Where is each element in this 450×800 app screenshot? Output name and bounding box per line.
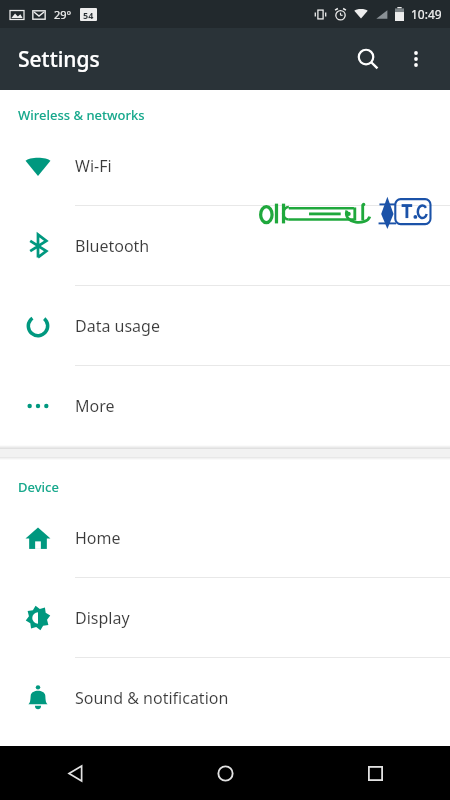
staticText: 29°	[54, 7, 72, 22]
staticText: Device	[18, 478, 59, 496]
button[interactable]: Home	[0, 498, 450, 577]
staticText: More	[75, 395, 115, 417]
staticText: Wireless & networks	[18, 106, 145, 124]
staticText: Wi-Fi	[75, 155, 112, 177]
staticText: Display	[75, 607, 130, 629]
staticText: Data usage	[75, 315, 160, 337]
button[interactable]: Sound & notification	[0, 658, 450, 737]
staticText: Settings	[18, 45, 100, 74]
button[interactable]: Recent apps	[300, 746, 450, 800]
staticText: Home	[75, 527, 121, 549]
staticText: 10:49	[411, 6, 442, 22]
staticText: Sound & notification	[75, 687, 229, 709]
button[interactable]: Wi-Fi	[0, 126, 450, 205]
staticText: Bluetooth	[75, 235, 150, 257]
button[interactable]: Data usage	[0, 286, 450, 365]
button[interactable]: More options	[392, 35, 440, 83]
staticText: 54	[83, 9, 94, 21]
button[interactable]: Back	[0, 746, 150, 800]
button[interactable]: Search	[344, 35, 392, 83]
button[interactable]: Home	[150, 746, 300, 800]
button[interactable]: Display	[0, 578, 450, 657]
button[interactable]: More	[0, 366, 450, 445]
button[interactable]: Bluetooth	[0, 206, 450, 285]
